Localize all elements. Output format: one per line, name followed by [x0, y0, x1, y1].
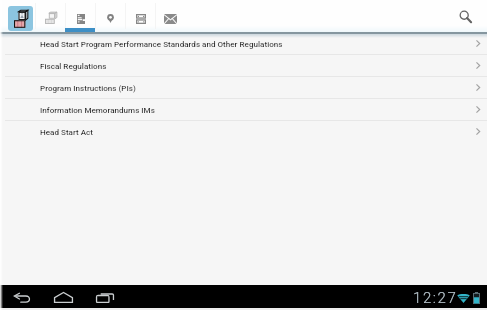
button[interactable]: Documents [66, 0, 95, 32]
button[interactable]: Regulations [6, 0, 35, 32]
staticText: 12:27 [413, 289, 458, 307]
button[interactable]: Resources [126, 0, 155, 32]
button[interactable]: Search [454, 5, 476, 27]
button[interactable]: Head Start Act [0, 121, 487, 142]
button[interactable]: Head Start Program Performance Standards… [0, 33, 487, 54]
button[interactable]: Back [4, 285, 41, 310]
button[interactable]: Information Memorandums IMs [0, 99, 487, 120]
staticText: Information Memorandums IMs [40, 105, 155, 114]
staticText: Head Start Program Performance Standards… [40, 39, 283, 48]
button[interactable]: Program Instructions (PIs) [0, 77, 487, 98]
button[interactable]: Messages [156, 0, 185, 32]
staticText: Head Start Act [40, 127, 94, 136]
button[interactable]: Fiscal Regulations [0, 55, 487, 76]
staticText: Program Instructions (PIs) [40, 83, 136, 92]
button[interactable]: Policy clarifications [36, 0, 65, 32]
button[interactable]: Home [45, 285, 82, 310]
button[interactable]: Locations [96, 0, 125, 32]
button[interactable]: Recent apps [86, 285, 123, 310]
staticText: Fiscal Regulations [40, 61, 107, 70]
